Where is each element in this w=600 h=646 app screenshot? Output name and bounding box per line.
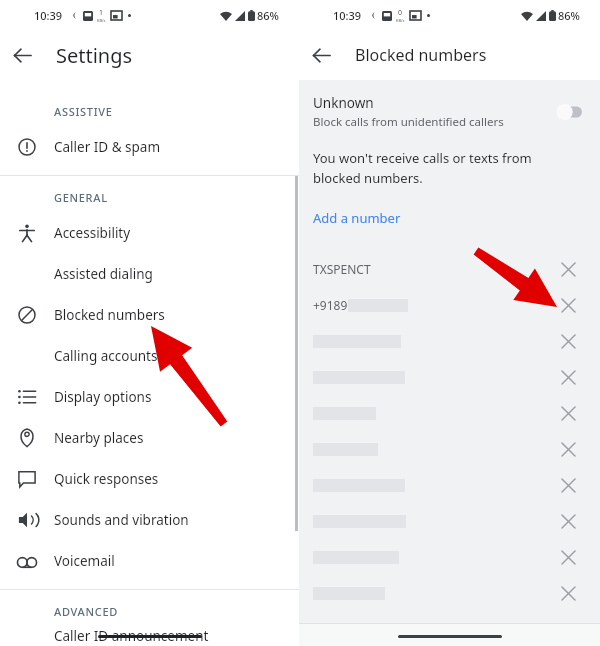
staticText: Unknown [313,94,374,112]
button[interactable]: Back [299,33,343,77]
button[interactable]: Remove number [550,395,586,431]
staticText: Display options [54,388,152,406]
button[interactable]: Unknown [299,91,600,133]
staticText: Blocked numbers [355,44,487,66]
staticText: 86% [558,8,580,23]
button[interactable]: Remove number [299,539,600,575]
staticText: KB/s [97,18,106,23]
staticText: GENERAL [54,190,108,205]
staticText: Blocked numbers [54,306,165,324]
staticText: Nearby places [54,429,144,447]
staticText: Quick responses [54,470,159,488]
button[interactable]: Remove number [550,359,586,395]
button[interactable]: Remove number [299,323,600,359]
button[interactable]: Remove number [550,323,586,359]
button[interactable]: Remove number [299,467,600,503]
staticText: 10:39 [333,8,362,23]
button[interactable]: Remove number [299,395,600,431]
staticText: +9189 [313,297,348,313]
button[interactable]: Caller ID & spam [0,126,299,167]
button[interactable]: Remove number [550,503,586,539]
button[interactable]: Remove number [299,359,600,395]
staticText: TXSPENCT [313,261,371,277]
staticText: Settings [56,42,133,69]
button[interactable]: Calling accounts [0,335,299,376]
staticText: 10:39 [34,8,63,23]
button[interactable]: Remove number [299,503,600,539]
button[interactable]: Accessibility [0,212,299,253]
button[interactable]: Caller ID announcement [0,626,299,646]
button[interactable]: Remove number [550,575,586,611]
staticText: Caller ID announcement [54,627,209,645]
button[interactable]: Remove number [550,539,586,575]
staticText: 86% [257,8,279,23]
staticText: Sounds and vibration [54,511,189,529]
staticText: 1 [99,8,104,18]
staticText: Accessibility [54,224,131,242]
staticText: ADVANCED [54,604,118,619]
button[interactable]: Add a number [299,205,600,231]
button[interactable]: Back [0,33,44,77]
button[interactable]: Display options [0,376,299,417]
button[interactable]: TXSPENCT [299,251,600,287]
staticText: 0 [398,8,403,18]
staticText: Assisted dialing [54,265,153,283]
staticText: Calling accounts [54,347,158,365]
button[interactable]: Remove number [299,575,600,611]
staticText: You won't receive calls or texts from bl… [313,149,578,187]
button[interactable]: Assisted dialing [0,253,299,294]
staticText: Caller ID & spam [54,138,161,156]
button[interactable]: Quick responses [0,458,299,499]
staticText: ASSISTIVE [54,104,113,119]
button[interactable]: Remove number [550,431,586,467]
button[interactable]: Blocked numbers [0,294,299,335]
button[interactable]: Remove number [550,251,586,287]
button[interactable]: Sounds and vibration [0,499,299,540]
button[interactable]: Remove number [550,287,586,323]
staticText: Block calls from unidentified callers [313,114,504,130]
button[interactable]: Nearby places [0,417,299,458]
button[interactable]: Remove number [550,467,586,503]
staticText: KB/s [396,18,405,23]
staticText: Voicemail [54,552,115,570]
button[interactable]: +9189 [299,287,600,323]
button[interactable]: Voicemail [0,540,299,581]
button[interactable]: Remove number [299,431,600,467]
staticText: Add a number [313,209,401,227]
